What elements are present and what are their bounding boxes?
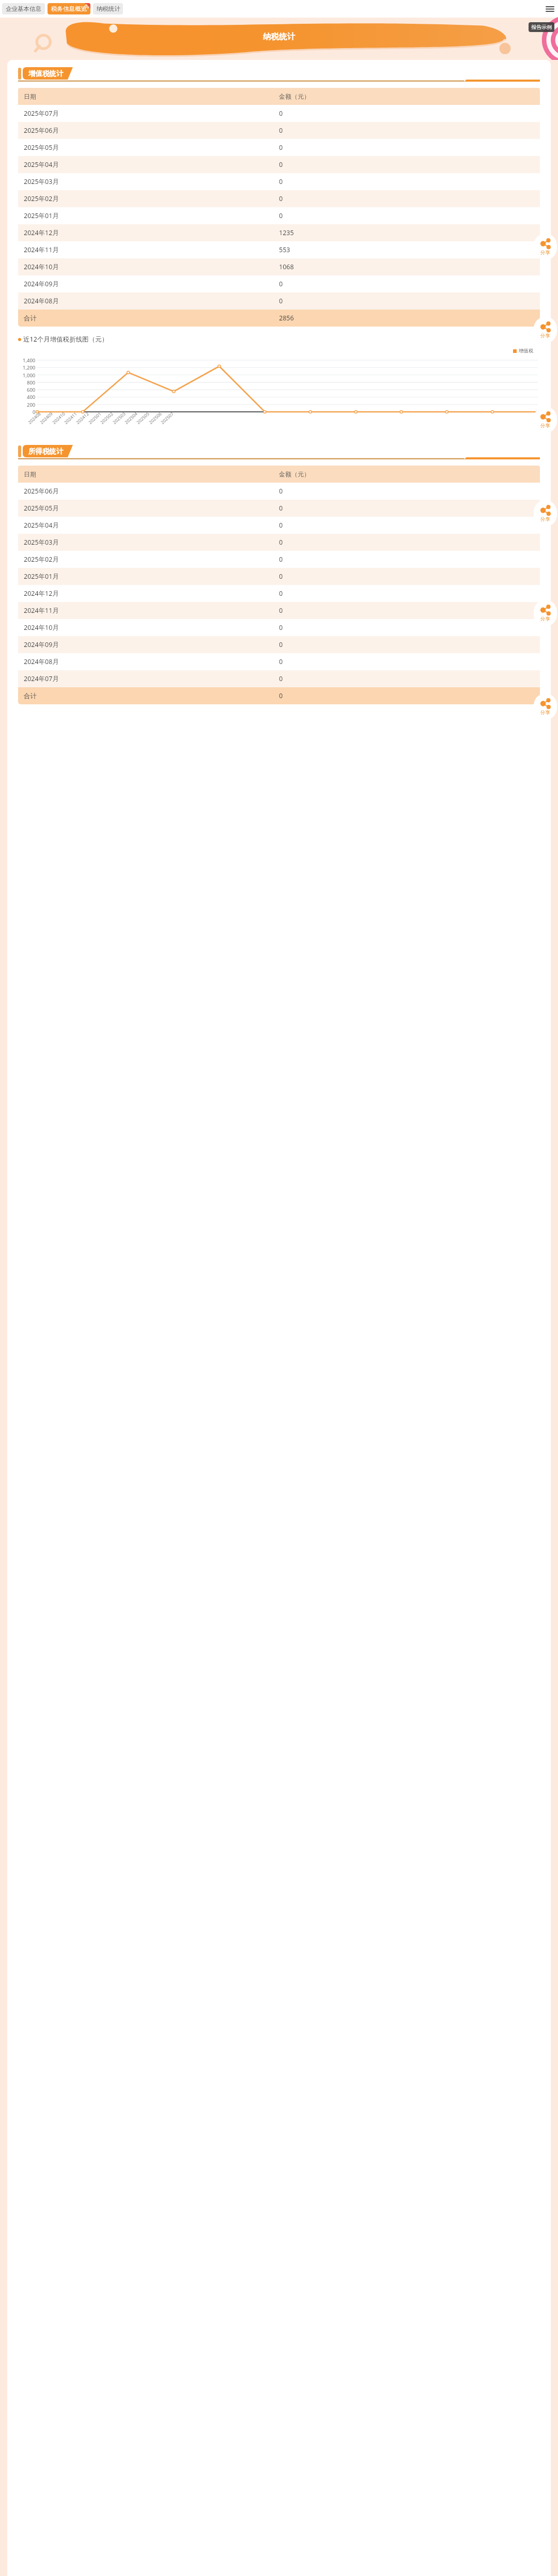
- staticText: 1,000: [23, 372, 36, 378]
- staticText: 分享: [540, 333, 550, 339]
- staticText: 2024年09月: [24, 640, 59, 649]
- staticText: 0: [279, 487, 283, 496]
- button[interactable]: 2024年07月: [18, 670, 540, 687]
- staticText: 0: [279, 126, 283, 135]
- button[interactable]: 2024年11月: [18, 602, 540, 619]
- button[interactable]: 2024年12月: [18, 585, 540, 602]
- button[interactable]: 分享 Share: [534, 234, 557, 260]
- staticText: 分享: [540, 250, 550, 256]
- button[interactable]: 报告示例: [529, 22, 554, 32]
- staticText: 202408: [27, 411, 42, 426]
- staticText: 2025年01月: [24, 211, 59, 220]
- staticText: 报告示例: [531, 24, 552, 30]
- staticText: 202506: [148, 411, 163, 426]
- button[interactable]: 税务信息概览: [48, 3, 90, 14]
- button[interactable]: 分享 Share: [534, 407, 557, 433]
- button[interactable]: 2025年03月: [18, 173, 540, 190]
- staticText: 0: [279, 109, 283, 118]
- staticText: 2025年04月: [24, 521, 59, 530]
- button[interactable]: 2025年01月: [18, 207, 540, 224]
- staticText: 202504: [123, 411, 139, 426]
- button[interactable]: 2025年07月: [18, 105, 540, 122]
- staticText: 2025年04月: [24, 160, 59, 169]
- staticText: 0: [279, 160, 283, 169]
- button[interactable]: 2025年05月: [18, 139, 540, 156]
- button[interactable]: 2025年04月: [18, 156, 540, 173]
- staticText: 2025年05月: [24, 143, 59, 152]
- staticText: 0: [279, 657, 283, 666]
- button[interactable]: 2025年04月: [18, 517, 540, 534]
- staticText: 增值税统计: [28, 69, 64, 78]
- staticText: 1,200: [23, 364, 36, 371]
- button[interactable]: 2025年06月: [18, 483, 540, 500]
- staticText: 企业基本信息: [6, 5, 41, 12]
- staticText: 0: [279, 589, 283, 598]
- button[interactable]: 2024年11月: [18, 241, 540, 258]
- button[interactable]: 2024年08月: [18, 292, 540, 310]
- staticText: 0: [279, 211, 283, 220]
- button[interactable]: 分享 Share: [534, 317, 557, 343]
- button[interactable]: 分享 Share: [534, 693, 557, 720]
- button[interactable]: 企业基本信息: [2, 3, 45, 14]
- staticText: 2024年08月: [24, 657, 59, 666]
- button[interactable]: 2024年12月: [18, 224, 540, 241]
- button[interactable]: 2024年09月: [18, 636, 540, 653]
- staticText: 分享: [540, 423, 550, 429]
- staticText: 0: [279, 143, 283, 152]
- staticText: 1,400: [23, 357, 36, 363]
- staticText: 0: [279, 572, 283, 581]
- button[interactable]: 分享 Share: [534, 600, 557, 626]
- staticText: 1235: [279, 228, 294, 237]
- button[interactable]: 2024年10月: [18, 619, 540, 636]
- staticText: 2025年06月: [24, 487, 59, 496]
- staticText: 分享: [540, 616, 550, 622]
- button[interactable]: 2025年03月: [18, 534, 540, 551]
- staticText: 0: [279, 674, 283, 683]
- staticText: 0: [279, 606, 283, 615]
- staticText: 202501: [87, 411, 103, 426]
- button[interactable]: 2024年08月: [18, 653, 540, 670]
- staticText: 800: [27, 379, 36, 385]
- staticText: 0: [279, 177, 283, 186]
- staticText: 纳税统计: [263, 32, 295, 42]
- staticText: 2025年03月: [24, 538, 59, 547]
- staticText: 0: [33, 409, 36, 415]
- staticText: 553: [279, 245, 290, 254]
- button[interactable]: 2025年02月: [18, 190, 540, 207]
- button[interactable]: 纳税统计: [93, 3, 123, 14]
- staticText: 日期: [24, 470, 36, 478]
- staticText: 202410: [51, 411, 67, 426]
- staticText: 2024年09月: [24, 280, 59, 288]
- button[interactable]: 2025年02月: [18, 551, 540, 568]
- button[interactable]: 2024年09月: [18, 275, 540, 292]
- staticText: 0: [279, 691, 283, 700]
- button[interactable]: 合计: [18, 310, 540, 327]
- staticText: 202503: [111, 411, 127, 426]
- staticText: 0: [279, 555, 283, 564]
- staticText: 2024年10月: [24, 623, 59, 632]
- staticText: 2024年11月: [24, 606, 59, 615]
- staticText: 增值税: [519, 348, 534, 354]
- staticText: 202502: [99, 411, 115, 426]
- staticText: 分享: [540, 516, 550, 522]
- staticText: 2024年08月: [24, 297, 59, 305]
- button[interactable]: Menu: [543, 2, 556, 16]
- staticText: 2025年01月: [24, 572, 59, 581]
- staticText: 600: [27, 387, 36, 393]
- staticText: 0: [279, 280, 283, 288]
- button[interactable]: 2025年05月: [18, 500, 540, 517]
- staticText: 0: [279, 521, 283, 530]
- staticText: 202409: [39, 411, 54, 426]
- staticText: 金额（元）: [279, 92, 310, 100]
- button[interactable]: 合计: [18, 687, 540, 704]
- staticText: 2025年07月: [24, 109, 59, 118]
- staticText: 金额（元）: [279, 470, 310, 478]
- staticText: 202505: [135, 411, 151, 426]
- button[interactable]: 2024年10月: [18, 258, 540, 275]
- button[interactable]: 2025年01月: [18, 568, 540, 585]
- staticText: 所得税统计: [28, 447, 64, 456]
- staticText: 2024年12月: [24, 228, 59, 237]
- staticText: 2025年05月: [24, 504, 59, 513]
- button[interactable]: 分享 Share: [534, 500, 557, 527]
- button[interactable]: 2025年06月: [18, 122, 540, 139]
